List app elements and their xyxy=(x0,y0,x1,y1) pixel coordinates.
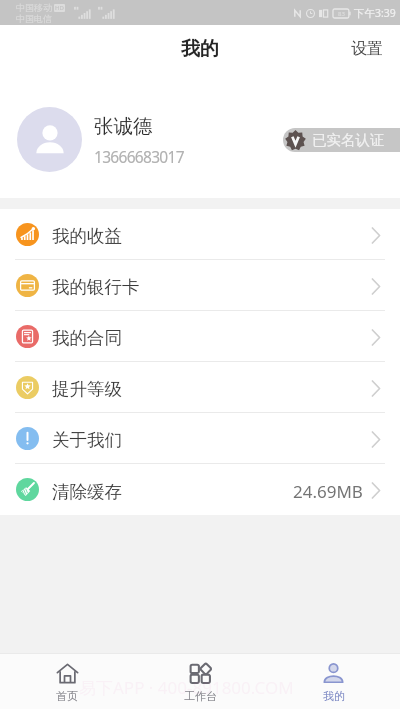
staticText: 设置 xyxy=(351,39,383,59)
button[interactable]: 关于我们 xyxy=(0,413,400,463)
button[interactable]: 已实名认证 xyxy=(283,128,400,152)
staticText: 中国电信 xyxy=(16,13,52,24)
button[interactable]: 我的银行卡 xyxy=(0,260,400,310)
staticText: 已实名认证 xyxy=(312,131,385,149)
staticText: 83 xyxy=(338,10,345,18)
button[interactable]: 工作台 xyxy=(134,654,267,709)
staticText: 我的银行卡 xyxy=(52,276,140,298)
button[interactable]: 首页 xyxy=(0,654,134,709)
staticText: 首页 xyxy=(56,689,78,703)
staticText: 中国移动 xyxy=(16,2,52,13)
staticText: 下午3:39 xyxy=(354,6,396,20)
staticText: 清除缓存 xyxy=(52,481,122,503)
staticText: 我的合同 xyxy=(52,327,122,349)
button[interactable]: 我的收益 xyxy=(0,209,400,259)
staticText: 易下APP · 400-891800.COM xyxy=(79,676,294,699)
staticText: HD xyxy=(55,4,64,12)
staticText: 我的 xyxy=(323,689,345,703)
button[interactable]: 我的 xyxy=(267,654,400,709)
button[interactable]: 提升等级 xyxy=(0,362,400,412)
button[interactable]: 清除缓存 xyxy=(0,464,400,515)
button[interactable]: 我的合同 xyxy=(0,311,400,361)
staticText: 提升等级 xyxy=(52,378,122,400)
button[interactable]: 设置 xyxy=(334,29,400,69)
staticText: 关于我们 xyxy=(52,429,122,451)
staticText: 我的 xyxy=(181,37,219,61)
staticText: 13666683017 xyxy=(94,146,184,167)
staticText: 我的收益 xyxy=(52,225,122,247)
staticText: 24.69MB xyxy=(293,480,363,503)
staticText: 张诚德 xyxy=(94,114,153,139)
staticText: 工作台 xyxy=(184,689,217,703)
